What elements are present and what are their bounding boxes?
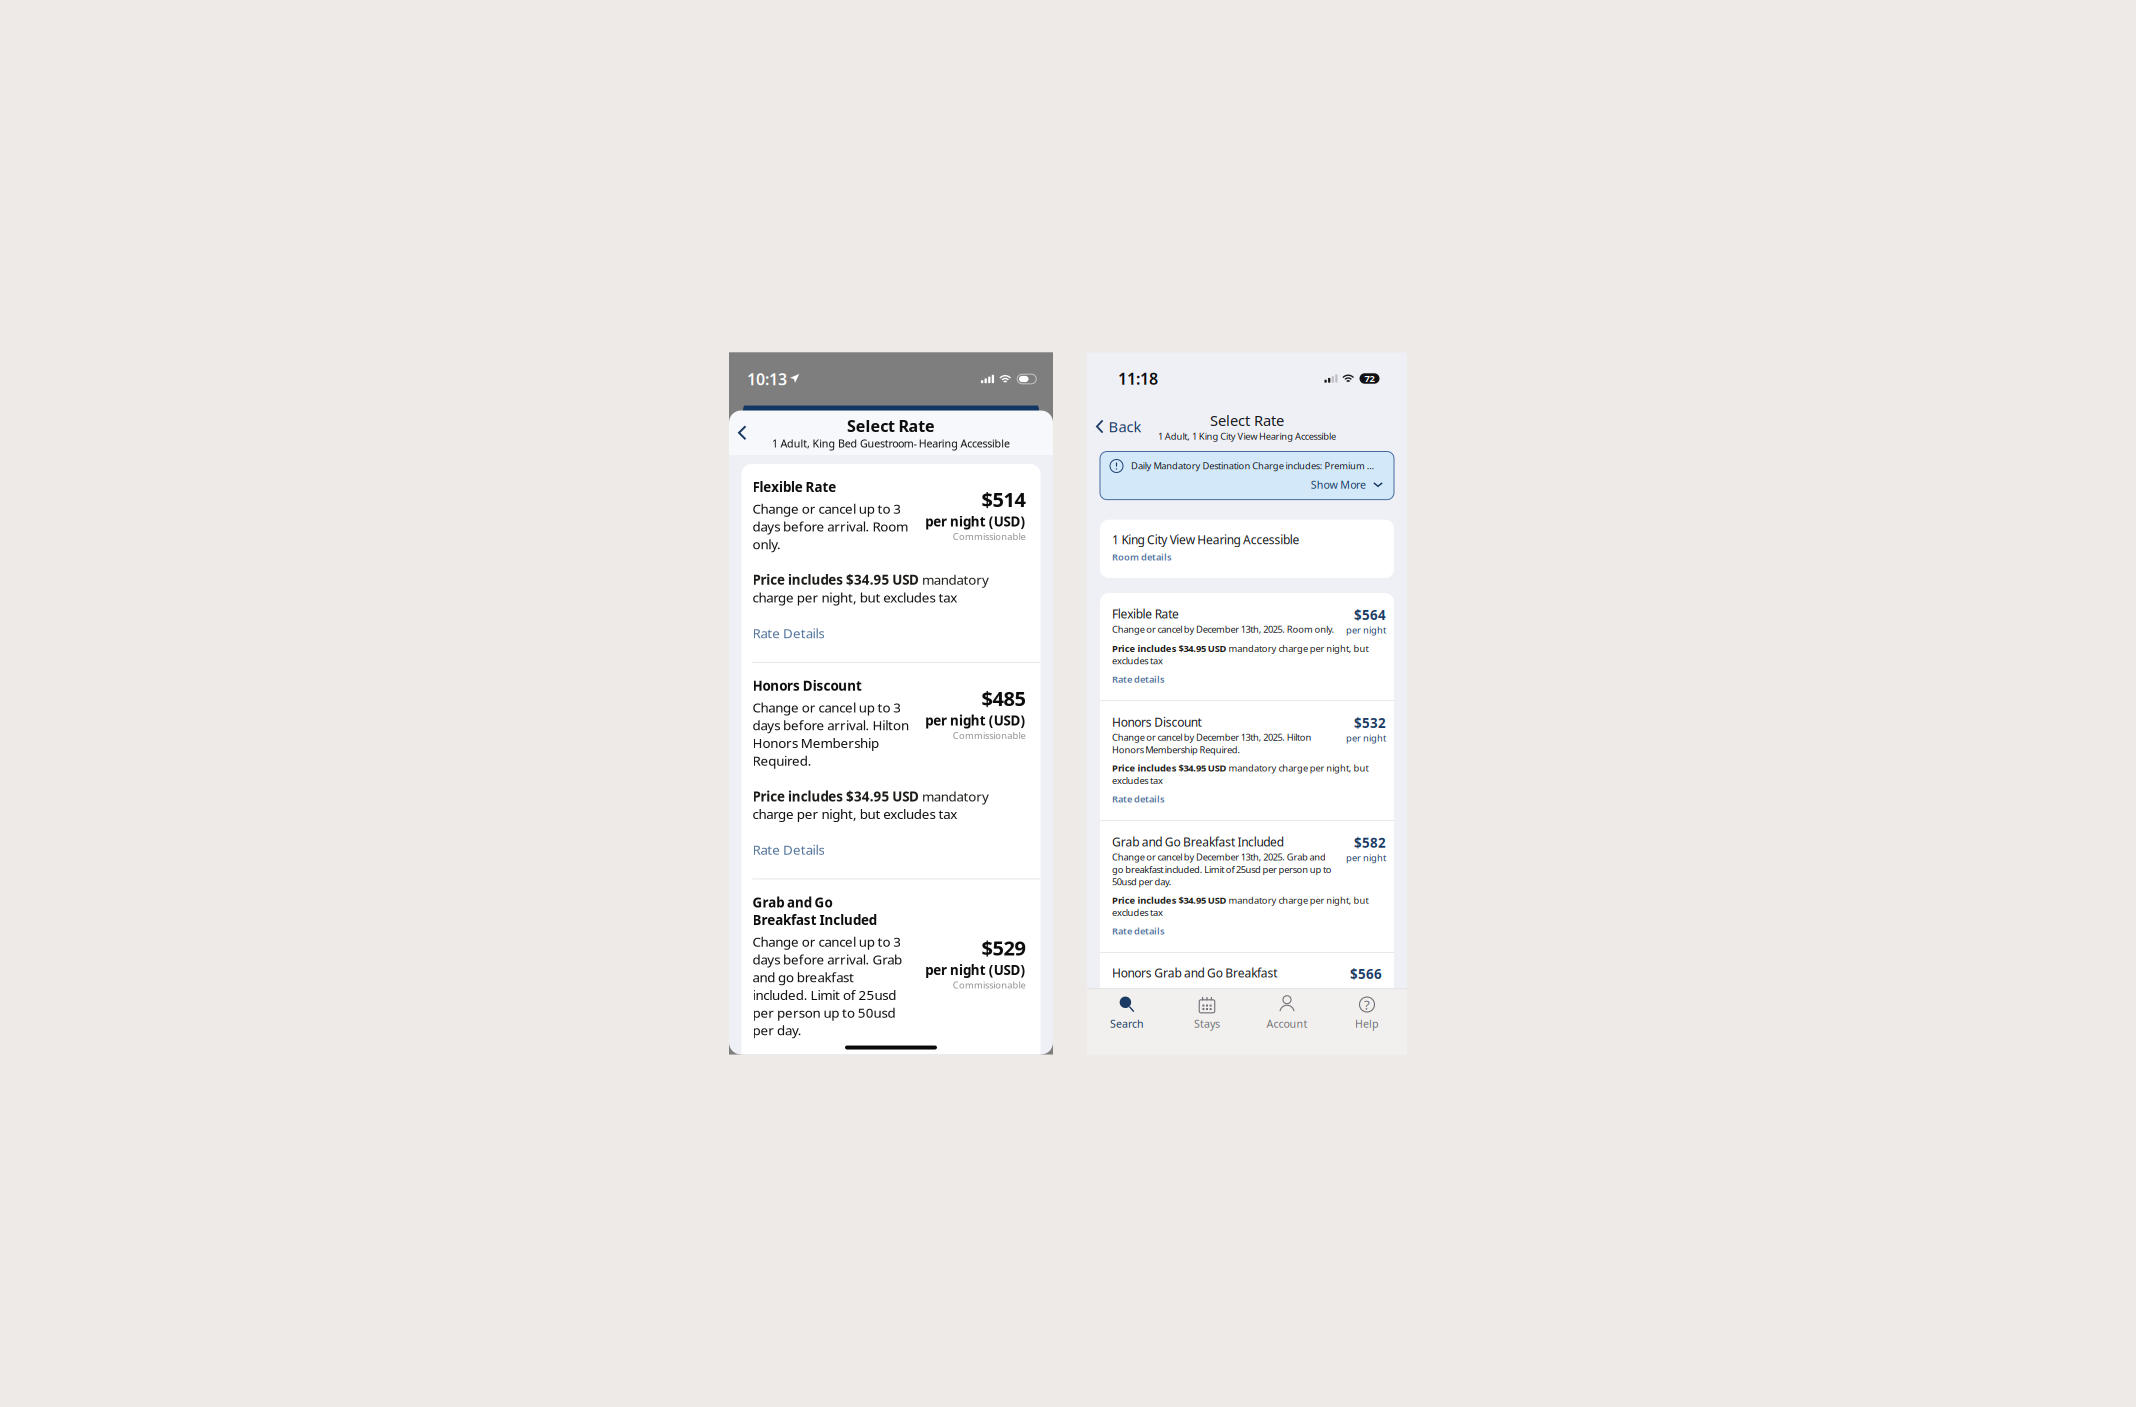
staticText: $514	[981, 486, 1025, 513]
staticText: Change or cancel up to 3	[752, 933, 901, 950]
staticText: Rate Details	[752, 841, 824, 858]
staticText: excludes tax	[1112, 654, 1163, 667]
staticText: Grab and Go Breakfast Included	[1112, 834, 1284, 850]
staticText: days before arrival. Room	[752, 517, 908, 535]
staticText: per night	[1346, 851, 1386, 864]
staticText: 10:13	[747, 368, 787, 390]
staticText: Rate details	[1112, 793, 1165, 805]
staticText: Stays	[1194, 1016, 1220, 1031]
button[interactable]: Rate details	[1112, 787, 1165, 805]
button[interactable]: Rate Details	[752, 606, 824, 642]
staticText: per day.	[752, 1021, 802, 1039]
staticText: only.	[752, 535, 781, 553]
staticText: Required.	[752, 752, 812, 769]
staticText: $582	[1354, 834, 1386, 851]
staticText: 1 Adult, King Bed Guestroom- Hearing Acc…	[772, 436, 1010, 450]
staticText: Change or cancel by December 13th, 2025.…	[1112, 851, 1326, 863]
staticText: per night (USD)	[925, 711, 1025, 729]
staticText: Honors Membership Required.	[1112, 743, 1240, 756]
staticText: Price includes $34.95 USD mandatory char…	[1112, 762, 1368, 774]
staticText: Select Rate	[1210, 411, 1284, 430]
staticText: excludes tax	[1112, 774, 1163, 787]
button[interactable]: ?	[1327, 993, 1407, 1033]
staticText: Show More	[1311, 477, 1366, 492]
staticText: Rate Details	[752, 624, 824, 642]
staticText: Honors Grab and Go Breakfast	[1112, 965, 1277, 981]
staticText: Price includes $34.95 USD mandatory char…	[1112, 642, 1368, 654]
staticText: 50usd per day.	[1112, 875, 1172, 888]
button[interactable]: 1 King City View Hearing Accessible	[1100, 520, 1394, 578]
staticText: per night (USD)	[925, 513, 1025, 530]
staticText: Rate details	[1112, 673, 1165, 685]
staticText: Search	[1110, 1016, 1144, 1031]
button[interactable]: Rate details	[1112, 667, 1165, 685]
staticText: Flexible Rate	[752, 478, 836, 496]
staticText: Breakfast Included	[752, 911, 877, 929]
staticText: Daily Mandatory Destination Charge inclu…	[1131, 459, 1375, 472]
staticText: Change or cancel up to 3	[752, 698, 901, 716]
staticText: excludes tax	[1112, 906, 1163, 919]
staticText: Account	[1266, 1016, 1307, 1031]
staticText: per person up to 50usd	[752, 1004, 895, 1021]
staticText: days before arrival. Grab	[752, 950, 902, 968]
staticText: days before arrival. Hilton	[752, 716, 909, 734]
staticText: Price includes $34.95 USD mandatory char…	[1112, 894, 1368, 906]
staticText: and go breakfast	[752, 968, 854, 986]
button[interactable]: Search	[1087, 993, 1167, 1033]
button[interactable]: Account	[1247, 993, 1327, 1033]
staticText: 1 Adult, 1 King City View Hearing Access…	[1158, 430, 1336, 442]
staticText: $485	[981, 685, 1025, 711]
staticText: 1 King City View Hearing Accessible	[1112, 532, 1299, 548]
staticText: $566	[1350, 965, 1382, 983]
staticText: charge per night, but excludes tax	[752, 805, 957, 823]
staticText: charge per night, but excludes tax	[752, 588, 957, 606]
staticText: Price includes $34.95 USD mandatory	[752, 571, 989, 588]
staticText: 11:18	[1118, 368, 1158, 389]
button[interactable]: Daily Mandatory Destination Charge inclu…	[1100, 451, 1394, 500]
staticText: per night	[1346, 732, 1386, 744]
staticText: $532	[1354, 714, 1386, 732]
button[interactable]: Stays	[1167, 993, 1247, 1033]
staticText: Change or cancel by December 13th, 2025.…	[1112, 731, 1311, 743]
staticText: $529	[981, 934, 1025, 961]
staticText: Back	[1108, 417, 1141, 436]
staticText: Room details	[1112, 551, 1172, 563]
staticText: Select Rate	[847, 415, 935, 436]
staticText: go breakfast included. Limit of 25usd pe…	[1112, 863, 1332, 875]
staticText: Help	[1355, 1016, 1379, 1031]
staticText: Change or cancel by December 13th, 2025.…	[1112, 623, 1334, 635]
staticText: per night (USD)	[925, 961, 1025, 979]
staticText: $564	[1354, 606, 1386, 624]
staticText: Grab and Go	[752, 893, 832, 911]
button[interactable]: Back	[729, 417, 756, 448]
staticText: Commissionable	[953, 979, 1025, 991]
button[interactable]: Rate Details	[752, 823, 824, 858]
staticText: ?	[1364, 996, 1370, 1013]
button[interactable]: Back	[1087, 411, 1141, 442]
staticText: Honors Discount	[752, 677, 862, 694]
staticText: Commissionable	[953, 729, 1025, 741]
staticText: Flexible Rate	[1112, 606, 1179, 622]
staticText: per night	[1346, 624, 1386, 636]
staticText: Commissionable	[953, 530, 1025, 543]
staticText: Change or cancel up to 3	[752, 500, 901, 517]
button[interactable]: Rate details	[1112, 919, 1165, 937]
staticText: Honors Discount	[1112, 714, 1201, 730]
staticText: Honors Membership	[752, 734, 879, 752]
staticText: Price includes $34.95 USD mandatory	[752, 787, 989, 805]
staticText: included. Limit of 25usd	[752, 986, 896, 1004]
staticText: 72	[1364, 372, 1374, 385]
staticText: Rate details	[1112, 925, 1165, 937]
